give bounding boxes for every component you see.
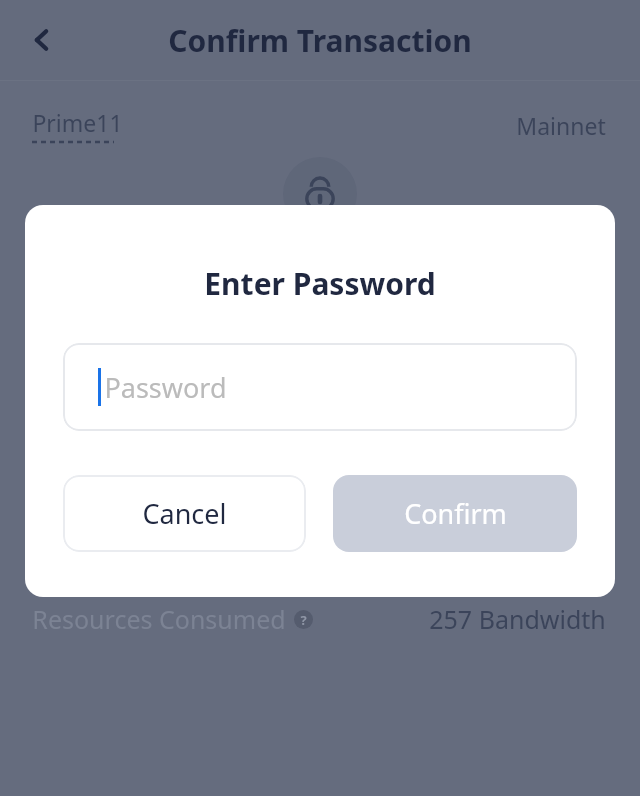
staticText: Mainnet (516, 110, 606, 141)
staticText: Enter Password (204, 263, 436, 304)
staticText: Confirm Transaction (168, 20, 472, 61)
button[interactable]: Cancel (63, 475, 306, 552)
staticText: Password (104, 369, 227, 406)
staticText: ? (300, 611, 307, 629)
staticText: Confirm (404, 495, 507, 532)
staticText: Cancel (142, 495, 227, 532)
button[interactable]: Confirm (333, 475, 577, 552)
staticText: 257 Bandwidth (429, 602, 606, 636)
staticText: Prime11 (32, 107, 123, 138)
staticText: Resources Consumed (32, 602, 286, 636)
button[interactable]: Back (16, 14, 68, 66)
button[interactable]: Password (63, 343, 577, 431)
